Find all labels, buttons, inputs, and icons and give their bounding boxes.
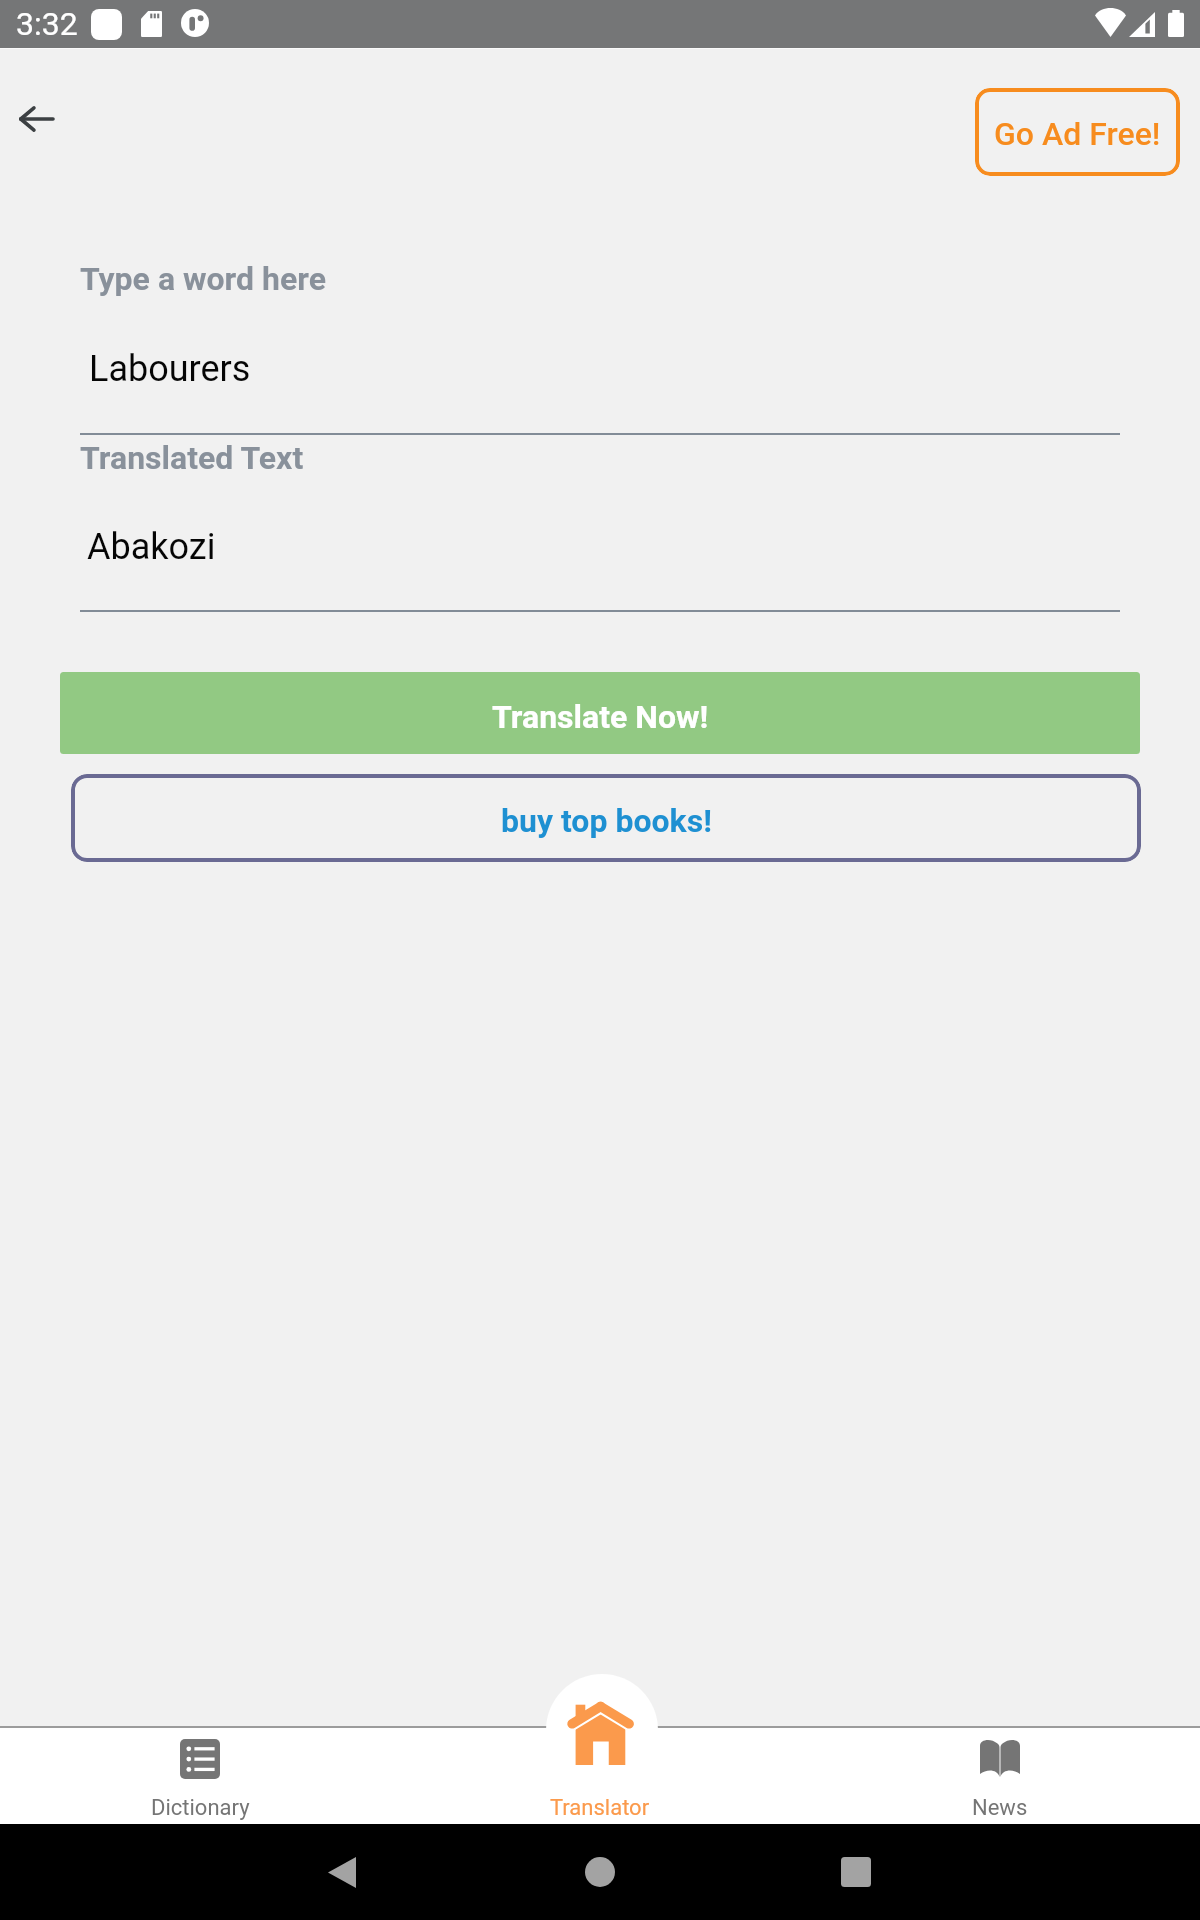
staticText: News — [972, 1795, 1028, 1821]
button[interactable]: News — [800, 1726, 1200, 1824]
button[interactable]: Dictionary — [0, 1726, 400, 1824]
staticText: Translated Text — [80, 439, 304, 477]
staticText: Translator — [550, 1795, 650, 1821]
button[interactable]: Home — [576, 1848, 624, 1896]
staticText: 3:32 — [16, 5, 78, 43]
button[interactable]: buy top books! — [71, 774, 1141, 862]
button[interactable]: Back — [5, 88, 67, 150]
button[interactable]: Back — [318, 1848, 366, 1896]
staticText: Go Ad Free! — [994, 115, 1161, 153]
button[interactable]: Recents — [832, 1848, 880, 1896]
staticText: Type a word here — [80, 260, 326, 298]
staticText: Labourers — [89, 348, 251, 390]
button[interactable]: Translator — [400, 1726, 800, 1824]
staticText: Dictionary — [151, 1795, 250, 1821]
button[interactable]: Go Ad Free! — [975, 88, 1180, 176]
button[interactable]: Translate Now! — [60, 672, 1140, 754]
staticText: buy top books! — [501, 802, 712, 840]
staticText: Abakozi — [87, 526, 216, 568]
staticText: Translate Now! — [492, 698, 709, 736]
